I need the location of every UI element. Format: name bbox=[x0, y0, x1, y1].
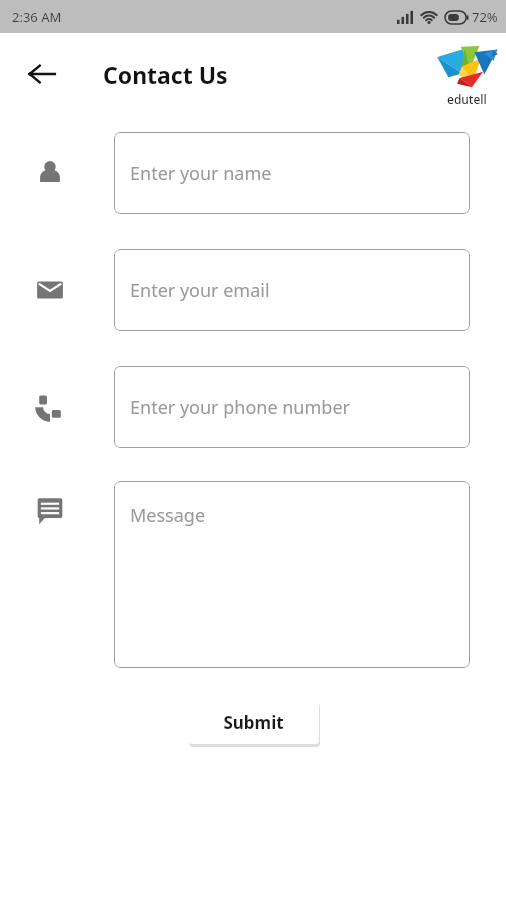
staticText: Message bbox=[130, 503, 206, 528]
button[interactable]: Enter your phone number bbox=[114, 366, 470, 448]
staticText: Enter your name bbox=[130, 161, 272, 186]
staticText: Submit bbox=[223, 711, 284, 734]
button[interactable]: Enter your email bbox=[114, 249, 470, 331]
button[interactable]: Edutell logo bbox=[436, 45, 498, 107]
staticText: edutell bbox=[447, 91, 487, 107]
button[interactable]: Submit bbox=[188, 700, 319, 744]
button[interactable]: Message bbox=[114, 481, 470, 668]
staticText: Contact Us bbox=[103, 59, 228, 90]
button[interactable]: Enter your name bbox=[114, 132, 470, 214]
button[interactable]: Back bbox=[18, 50, 66, 98]
staticText: 2:36 AM bbox=[12, 8, 62, 26]
staticText: Enter your phone number bbox=[130, 395, 350, 420]
staticText: Enter your email bbox=[130, 278, 270, 303]
staticText: 72% bbox=[472, 8, 498, 26]
